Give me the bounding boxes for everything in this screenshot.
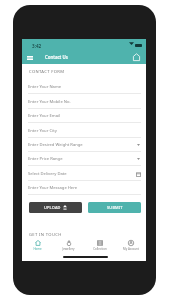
staticText: Enter Your Mobile No. (28, 99, 71, 105)
button[interactable]: Enter Your Email (28, 109, 141, 123)
staticText: Enter Your Email (28, 113, 61, 119)
button[interactable]: UPLOAD (29, 202, 82, 213)
staticText: Home (33, 247, 42, 251)
staticText: CONTACT FORM (29, 69, 65, 75)
staticText: SUBMIT (107, 205, 123, 210)
staticText: 3:42 (32, 43, 42, 49)
button[interactable]: Enter Desired Weight Range (28, 138, 141, 152)
button[interactable]: Collection (84, 238, 115, 252)
staticText: Enter Your City (28, 128, 57, 134)
staticText: Enter Price Range (28, 156, 63, 162)
button[interactable]: Enter Your City (28, 124, 141, 138)
staticText: Enter Your Message Here (28, 185, 78, 191)
button[interactable]: Enter Your Name (28, 80, 141, 94)
staticText: Select Delivery Date (28, 171, 67, 177)
staticText: My Account (123, 247, 139, 251)
staticText: Enter Your Name (28, 84, 62, 90)
button[interactable]: Menu (24, 52, 35, 63)
button[interactable]: Home (22, 238, 53, 252)
button[interactable]: Jewellery (53, 238, 84, 252)
staticText: Collection (93, 247, 107, 251)
staticText: Enter Desired Weight Range (28, 142, 83, 148)
button[interactable]: Enter Your Mobile No. (28, 95, 141, 109)
button[interactable]: My Account (115, 238, 146, 252)
staticText: Jewellery (62, 247, 75, 251)
staticText: Contact Us (45, 54, 68, 60)
button[interactable]: SUBMIT (88, 202, 141, 213)
button[interactable]: Select Delivery Date (28, 167, 141, 181)
button[interactable]: Enter Price Range (28, 152, 141, 166)
staticText: UPLOAD (44, 205, 61, 210)
button[interactable]: Enter Your Message Here (28, 181, 141, 195)
button[interactable]: Shopping bag (131, 51, 142, 62)
staticText: GET IN TOUCH (29, 232, 62, 238)
